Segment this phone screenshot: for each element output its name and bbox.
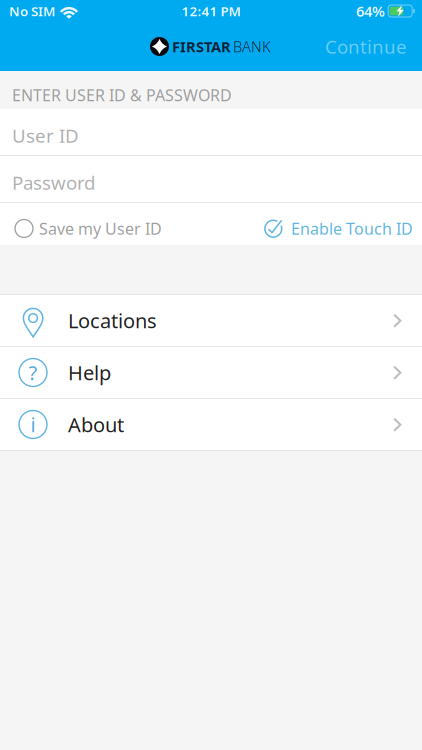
staticText: Password bbox=[12, 170, 95, 195]
button[interactable]: Enable Touch ID bbox=[256, 202, 422, 246]
staticText: Continue bbox=[325, 34, 407, 59]
staticText: Locations bbox=[68, 307, 157, 334]
button[interactable]: User ID bbox=[0, 109, 422, 155]
staticText: Save my User ID bbox=[39, 218, 162, 239]
staticText: ? bbox=[28, 359, 37, 386]
button[interactable]: Save my User ID bbox=[0, 202, 170, 246]
staticText: i bbox=[30, 411, 35, 438]
staticText: FIRSTAR bbox=[172, 37, 231, 56]
button[interactable]: Locations bbox=[0, 295, 422, 346]
button[interactable]: Password bbox=[0, 156, 422, 202]
staticText: 12:41 PM bbox=[181, 2, 240, 20]
staticText: Enable Touch ID bbox=[291, 218, 413, 239]
staticText: 64% bbox=[356, 1, 385, 21]
button[interactable]: i bbox=[0, 399, 422, 450]
button[interactable]: Continue bbox=[311, 22, 422, 71]
staticText: About bbox=[68, 411, 124, 438]
staticText: BANK bbox=[233, 37, 271, 56]
staticText: No SIM bbox=[9, 2, 55, 20]
staticText: ENTER USER ID & PASSWORD bbox=[12, 84, 232, 106]
button[interactable]: ? bbox=[0, 347, 422, 398]
staticText: User ID bbox=[12, 123, 79, 148]
staticText: Help bbox=[68, 359, 111, 386]
